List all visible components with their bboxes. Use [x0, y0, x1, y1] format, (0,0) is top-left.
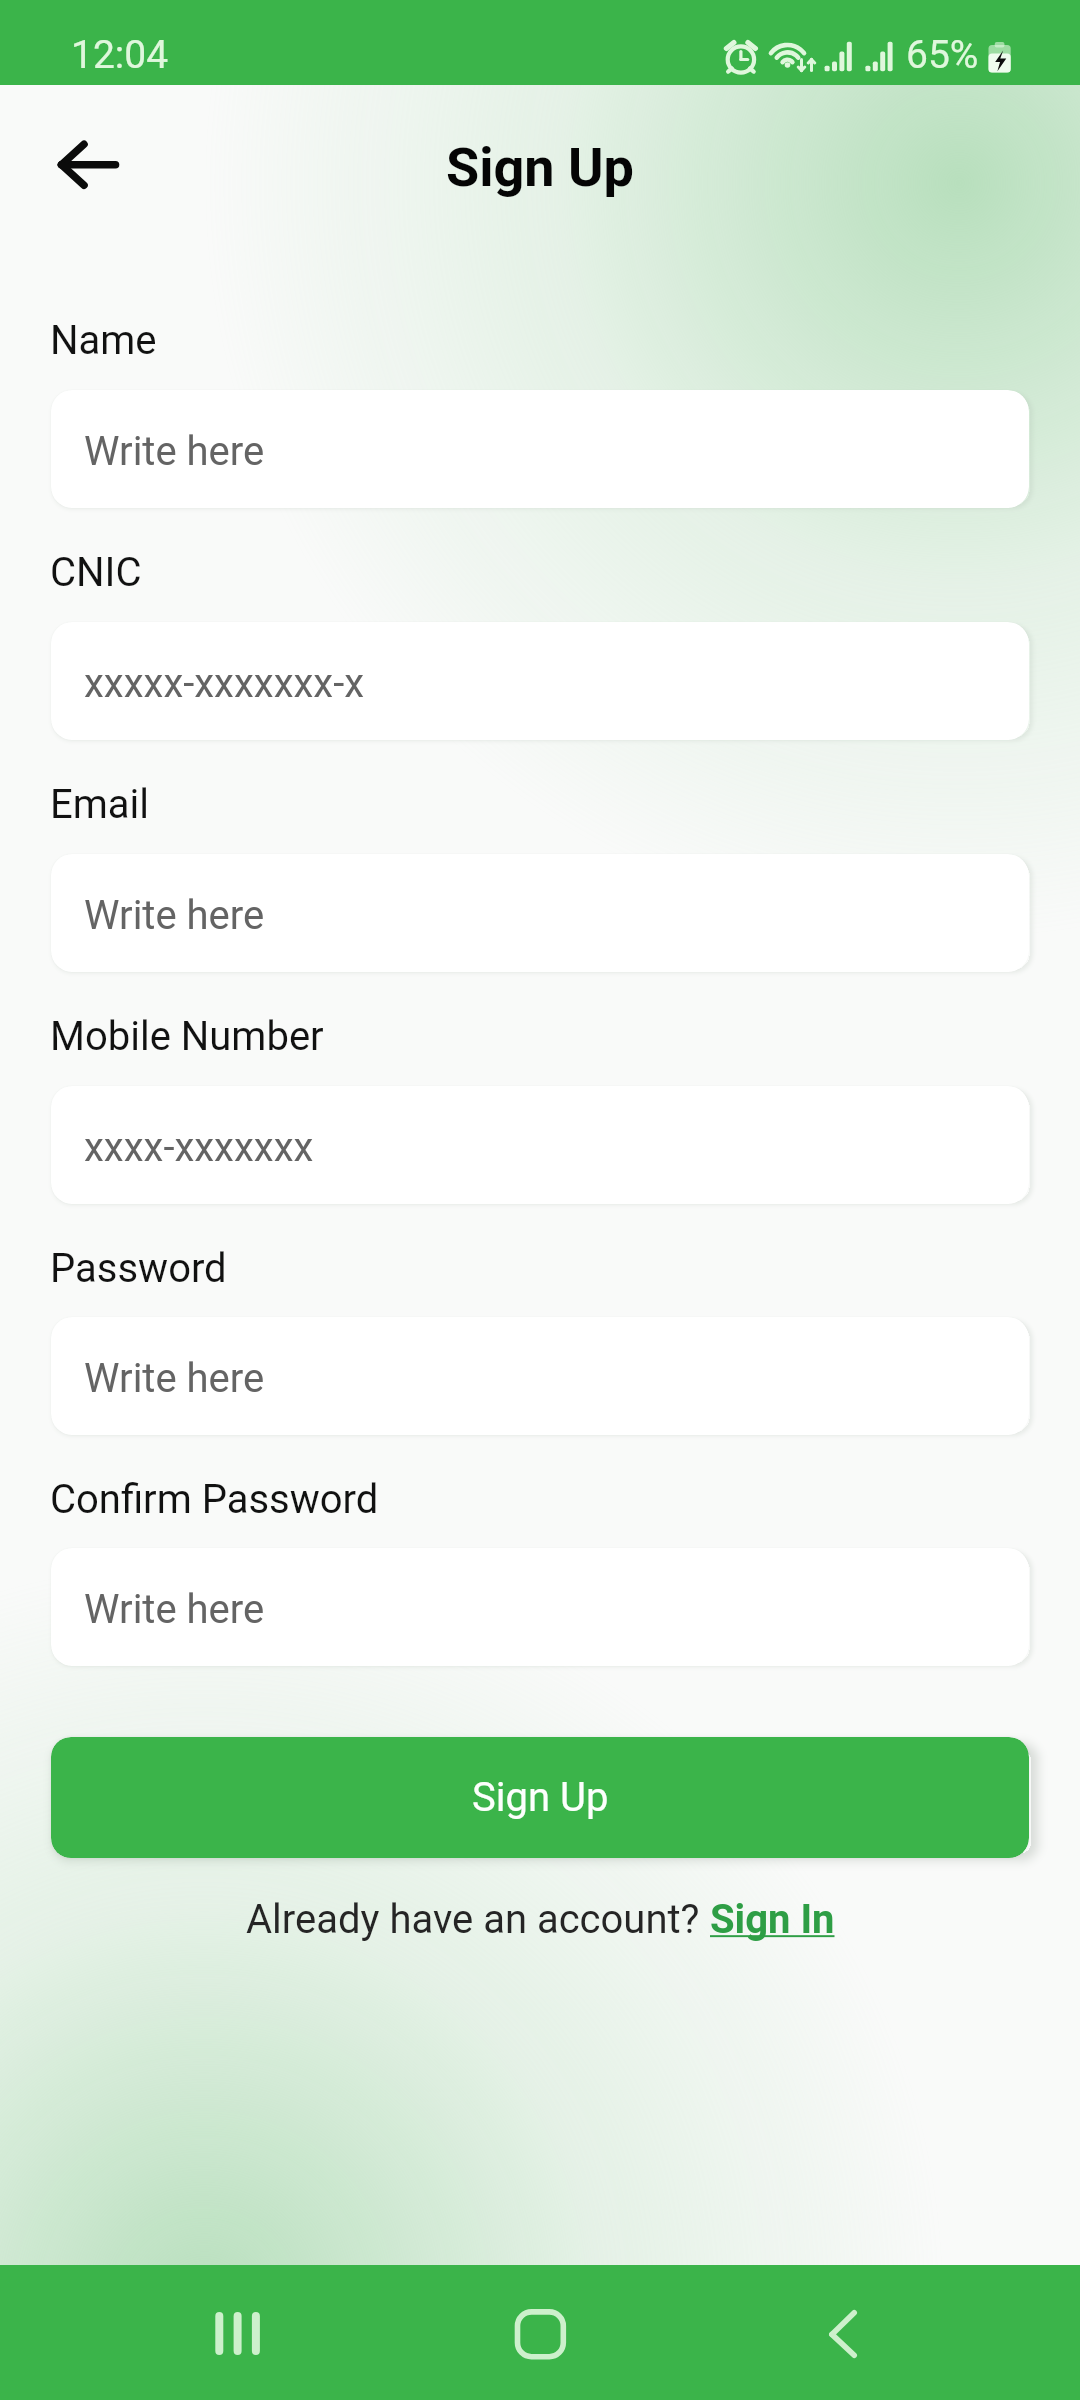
staticText: 12:04 — [71, 32, 169, 78]
staticText: Write here — [84, 892, 265, 939]
button[interactable]: Write here — [51, 854, 1029, 972]
staticText: Sign Up — [0, 136, 1080, 199]
staticText: xxxxx-xxxxxxx-x — [84, 660, 365, 707]
staticText: Write here — [84, 428, 265, 475]
staticText: CNIC — [50, 549, 142, 596]
button[interactable]: Write here — [51, 390, 1029, 508]
staticText: Password — [50, 1245, 227, 1292]
staticText: xxxx-xxxxxxx — [84, 1124, 314, 1171]
staticText: Email — [50, 781, 150, 828]
button[interactable]: Write here — [51, 1317, 1029, 1435]
staticText: Write here — [84, 1355, 265, 1402]
staticText: Mobile Number — [50, 1013, 324, 1060]
staticText: Already have an account? — [246, 1896, 710, 1943]
button[interactable]: Home — [480, 2265, 600, 2400]
button[interactable]: xxxx-xxxxxxx — [51, 1086, 1029, 1204]
staticText: Confirm Password — [50, 1476, 379, 1523]
button[interactable]: Recent apps — [178, 2265, 298, 2400]
staticText: Sign Up — [472, 1774, 609, 1821]
staticText: 65% — [906, 32, 979, 78]
button[interactable]: Back — [30, 123, 146, 207]
button[interactable]: xxxxx-xxxxxxx-x — [51, 622, 1029, 740]
button[interactable]: Write here — [51, 1548, 1029, 1666]
staticText: Name — [50, 317, 157, 364]
staticText: Write here — [84, 1586, 265, 1633]
button[interactable]: Sign Up — [51, 1737, 1029, 1858]
button[interactable]: Back — [783, 2265, 903, 2400]
button[interactable]: Sign In — [710, 1896, 835, 1943]
